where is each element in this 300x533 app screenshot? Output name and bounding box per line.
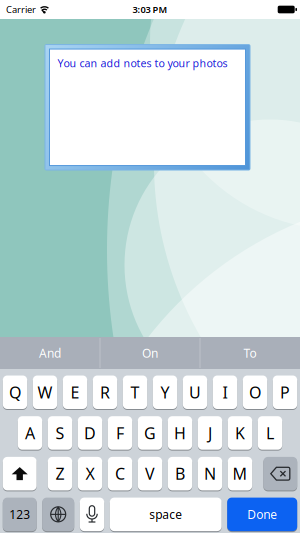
- button[interactable]: Done: [227, 498, 297, 531]
- staticText: O: [249, 382, 261, 403]
- staticText: I: [222, 382, 227, 403]
- button[interactable]: T: [123, 375, 147, 409]
- button[interactable]: Dictate: [80, 498, 104, 531]
- button[interactable]: W: [33, 375, 57, 409]
- staticText: A: [25, 422, 35, 443]
- button[interactable]: space: [110, 498, 222, 531]
- button[interactable]: Next keyboard: [42, 498, 74, 531]
- staticText: Q: [9, 382, 21, 403]
- button[interactable]: And: [0, 337, 99, 369]
- button[interactable]: R: [93, 375, 117, 409]
- button[interactable]: C: [108, 457, 132, 490]
- staticText: H: [174, 422, 186, 443]
- staticText: Z: [55, 463, 64, 484]
- staticText: L: [266, 422, 274, 443]
- staticText: U: [189, 382, 201, 403]
- staticText: W: [37, 382, 52, 403]
- staticText: You can add notes to your photos: [57, 56, 227, 70]
- button[interactable]: H: [168, 416, 192, 450]
- staticText: Y: [160, 382, 169, 403]
- button[interactable]: S: [48, 416, 72, 450]
- button[interactable]: A: [18, 416, 42, 450]
- staticText: V: [145, 463, 155, 484]
- button[interactable]: Delete: [263, 457, 297, 490]
- button[interactable]: 123: [3, 498, 37, 531]
- button[interactable]: Y: [153, 375, 177, 409]
- button[interactable]: Shift: [3, 457, 37, 490]
- staticText: space: [149, 506, 182, 522]
- button[interactable]: L: [258, 416, 282, 450]
- button[interactable]: E: [63, 375, 87, 409]
- button[interactable]: U: [183, 375, 207, 409]
- staticText: To: [243, 345, 256, 361]
- staticText: C: [115, 463, 125, 484]
- staticText: And: [39, 345, 61, 361]
- staticText: M: [232, 463, 247, 484]
- button[interactable]: D: [78, 416, 102, 450]
- staticText: E: [70, 382, 79, 403]
- button[interactable]: V: [138, 457, 162, 490]
- button[interactable]: To: [200, 337, 299, 369]
- button[interactable]: G: [138, 416, 162, 450]
- staticText: S: [55, 422, 64, 443]
- button[interactable]: I: [213, 375, 237, 409]
- staticText: P: [280, 382, 290, 403]
- button[interactable]: X: [78, 457, 102, 490]
- staticText: X: [85, 463, 94, 484]
- button[interactable]: M: [228, 457, 252, 490]
- staticText: T: [130, 382, 139, 403]
- button[interactable]: P: [273, 375, 297, 409]
- button[interactable]: On: [100, 337, 199, 369]
- button[interactable]: O: [243, 375, 267, 409]
- button[interactable]: Photo note text field: [44, 44, 250, 170]
- button[interactable]: Q: [3, 375, 27, 409]
- staticText: On: [142, 345, 158, 361]
- staticText: B: [175, 463, 185, 484]
- staticText: N: [204, 463, 216, 484]
- staticText: J: [208, 422, 212, 443]
- staticText: F: [116, 422, 124, 443]
- staticText: D: [84, 422, 96, 443]
- staticText: Done: [247, 506, 277, 522]
- staticText: 3:03 PM: [132, 3, 167, 16]
- button[interactable]: Z: [48, 457, 72, 490]
- staticText: Carrier: [6, 3, 36, 16]
- staticText: R: [100, 382, 110, 403]
- button[interactable]: F: [108, 416, 132, 450]
- button[interactable]: N: [198, 457, 222, 490]
- staticText: K: [235, 422, 245, 443]
- button[interactable]: K: [228, 416, 252, 450]
- staticText: G: [144, 422, 156, 443]
- staticText: 123: [9, 506, 30, 522]
- button[interactable]: J: [198, 416, 222, 450]
- button[interactable]: B: [168, 457, 192, 490]
